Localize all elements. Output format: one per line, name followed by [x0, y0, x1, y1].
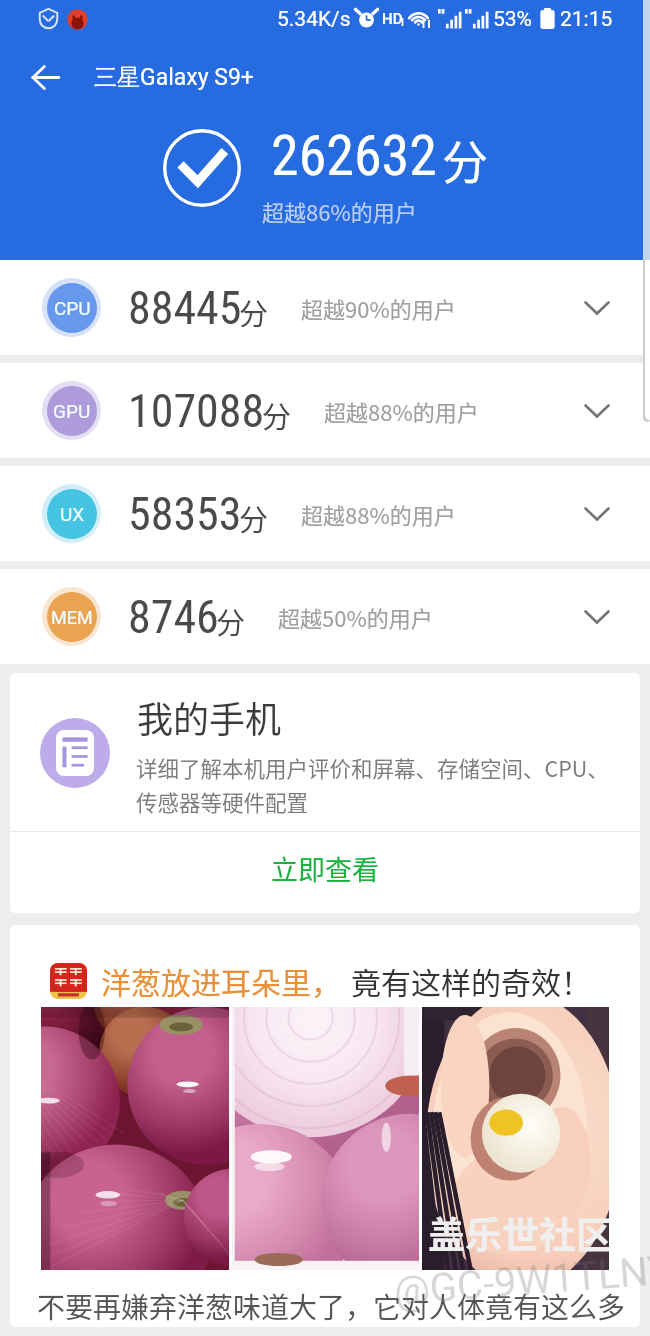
- staticText: 三星Galaxy S9+: [94, 63, 254, 92]
- staticText: 详细了解本机用户评价和屏幕、存储空间、CPU、 传感器等硬件配置: [136, 752, 609, 817]
- button[interactable]: 洋葱放进耳朵里，: [10, 925, 640, 1327]
- staticText: 超越50%的用户: [278, 601, 433, 633]
- staticText: CPU: [54, 297, 91, 319]
- staticText: 5.34K/s: [277, 7, 351, 32]
- staticText: 分: [239, 497, 269, 539]
- staticText: 21:15: [560, 7, 613, 32]
- staticText: 立即查看: [271, 849, 379, 888]
- staticText: 分: [239, 291, 269, 333]
- staticText: 1: [399, 16, 406, 29]
- staticText: 不要再嫌弃洋葱味道大了，它对人体竟有这么多: [37, 1286, 626, 1327]
- staticText: 洋葱放进耳朵里，: [101, 959, 341, 1002]
- button[interactable]: MEM: [0, 569, 650, 664]
- staticText: 53%: [493, 7, 532, 32]
- staticText: 竟有这样的奇效！: [351, 959, 591, 1002]
- button[interactable]: 立即查看: [10, 828, 640, 909]
- button[interactable]: CPU: [0, 260, 650, 355]
- staticText: 分: [442, 126, 488, 193]
- staticText: 分: [216, 600, 246, 642]
- staticText: MEM: [51, 607, 93, 628]
- staticText: @GC-9W1TLNYN: [392, 1244, 650, 1315]
- staticText: 超越88%的用户: [324, 395, 479, 427]
- staticText: 超越90%的用户: [301, 292, 456, 324]
- staticText: UX: [60, 503, 85, 525]
- staticText: 超越86%的用户: [262, 195, 417, 227]
- staticText: 107088: [128, 384, 265, 438]
- staticText: 盖乐世社区: [428, 1206, 609, 1260]
- button[interactable]: Back: [16, 48, 74, 106]
- staticText: 我的手机: [137, 691, 282, 743]
- staticText: 超越88%的用户: [301, 498, 456, 530]
- staticText: GPU: [53, 400, 91, 422]
- staticText: 88445: [128, 281, 242, 335]
- staticText: HD: [382, 10, 403, 28]
- staticText: 262632: [271, 123, 437, 189]
- button[interactable]: GPU: [0, 363, 650, 458]
- staticText: 8746: [128, 590, 219, 644]
- button[interactable]: UX: [0, 466, 650, 561]
- staticText: 58353: [128, 487, 242, 541]
- staticText: 分: [262, 394, 292, 436]
